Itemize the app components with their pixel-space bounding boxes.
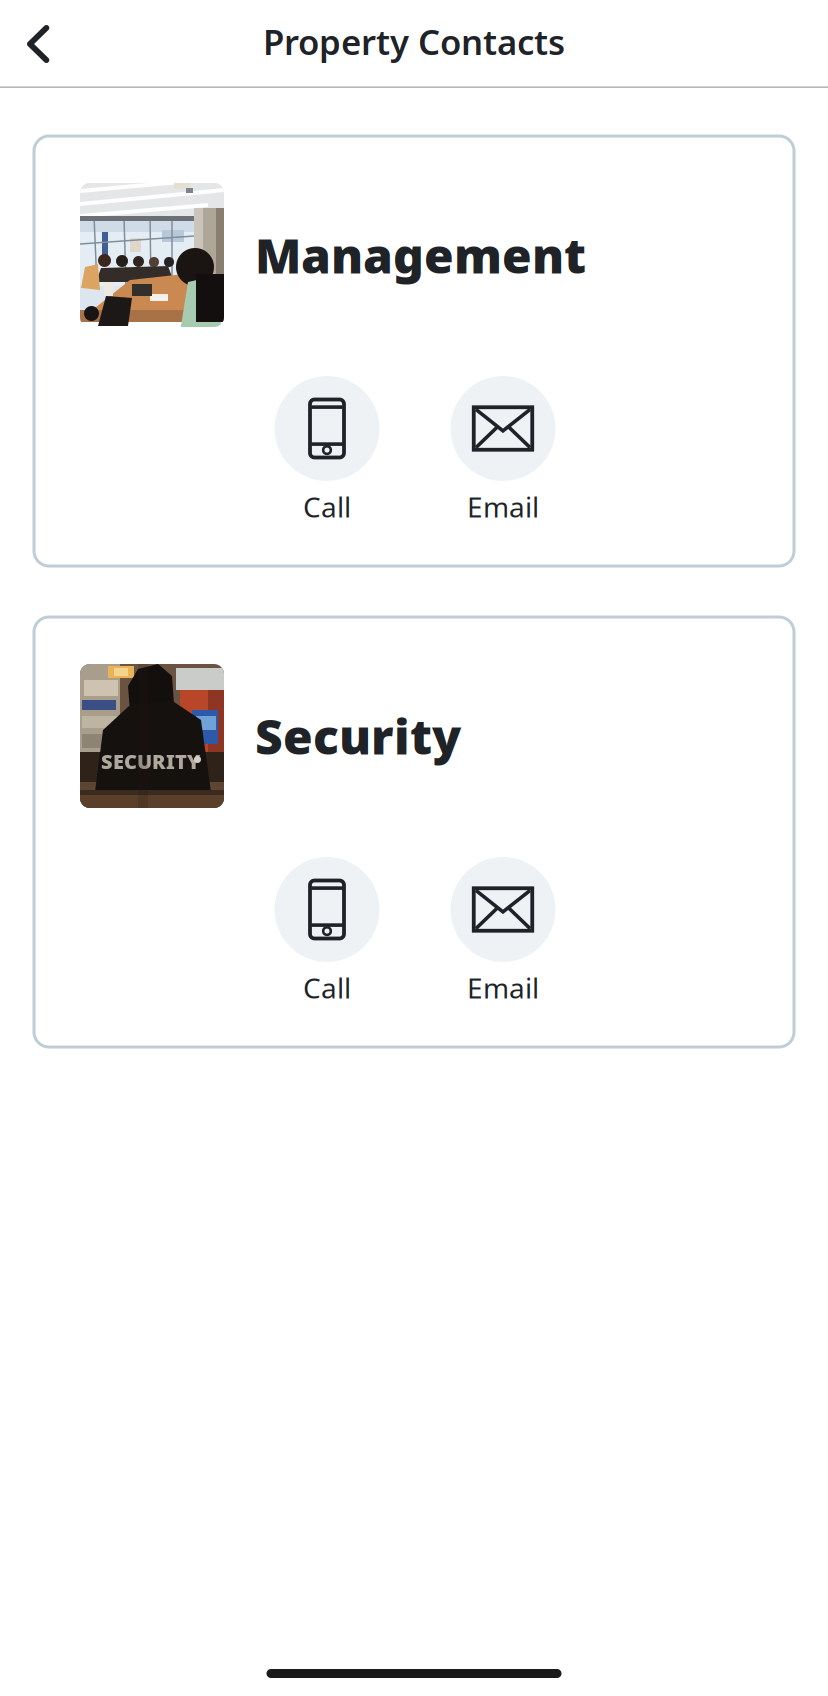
button[interactable]: Call <box>257 857 397 1006</box>
staticText: Email <box>467 969 539 1006</box>
staticText: Email <box>467 488 539 525</box>
staticText: Management <box>255 223 586 287</box>
button[interactable]: Email <box>433 857 573 1006</box>
staticText: Property Contacts <box>263 18 565 64</box>
button[interactable]: Email <box>433 376 573 525</box>
staticText: Call <box>303 488 351 525</box>
staticText: SECURITY <box>101 748 200 775</box>
button[interactable]: Call <box>257 376 397 525</box>
staticText: Security <box>255 704 461 768</box>
staticText: Call <box>303 969 351 1006</box>
button[interactable]: Back <box>0 0 75 89</box>
